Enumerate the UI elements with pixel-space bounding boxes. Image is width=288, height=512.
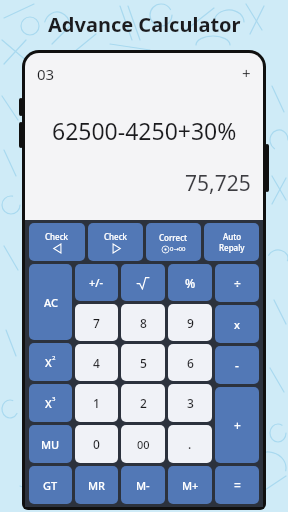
button[interactable]: Correct bbox=[146, 223, 201, 261]
button[interactable]: = bbox=[215, 466, 259, 504]
staticText: X bbox=[45, 396, 52, 411]
button[interactable]: X to the power 3 bbox=[29, 384, 72, 422]
staticText: 3 bbox=[52, 395, 56, 403]
button[interactable]: Square root bbox=[121, 264, 165, 301]
staticText: 7 bbox=[93, 315, 100, 331]
staticText: 5 bbox=[140, 355, 147, 371]
staticText: ÷ bbox=[234, 275, 241, 291]
button[interactable]: 1 bbox=[75, 384, 118, 422]
staticText: 8 bbox=[140, 315, 147, 331]
button[interactable]: + bbox=[215, 387, 259, 463]
button[interactable]: 0 bbox=[75, 425, 118, 463]
staticText: % bbox=[185, 275, 196, 291]
staticText: MR bbox=[88, 478, 106, 493]
button[interactable]: 6 bbox=[168, 344, 212, 381]
button[interactable]: - bbox=[215, 346, 259, 384]
staticText: Correct bbox=[159, 232, 188, 243]
staticText: x bbox=[234, 317, 240, 332]
button[interactable]: X to the power 2 bbox=[29, 343, 72, 381]
button[interactable]: 9 bbox=[168, 304, 212, 341]
staticText: 2 bbox=[52, 354, 56, 362]
staticText: Check bbox=[104, 231, 128, 242]
staticText: + bbox=[242, 63, 251, 83]
button[interactable]: % bbox=[168, 264, 212, 301]
staticText: AC bbox=[44, 295, 58, 310]
button[interactable]: 2 bbox=[121, 384, 165, 422]
staticText: = bbox=[234, 477, 241, 493]
staticText: 3 bbox=[187, 395, 194, 411]
staticText: Advance Calculator bbox=[48, 11, 241, 38]
button[interactable]: Check bbox=[29, 223, 85, 261]
button[interactable]: +/- bbox=[75, 264, 118, 301]
button[interactable]: MU bbox=[29, 425, 72, 463]
staticText: 4 bbox=[93, 355, 100, 371]
staticText: 0 bbox=[93, 436, 100, 452]
button[interactable]: 5 bbox=[121, 344, 165, 381]
staticText: M- bbox=[136, 478, 150, 493]
button[interactable]: 4 bbox=[75, 344, 118, 381]
staticText: 62500-4250+30% bbox=[52, 115, 237, 146]
staticText: Check bbox=[45, 231, 69, 242]
staticText: GT bbox=[43, 478, 58, 493]
staticText: 6 bbox=[187, 355, 194, 371]
staticText: + bbox=[234, 417, 241, 433]
button[interactable]: 00 bbox=[121, 425, 165, 463]
button[interactable]: AC bbox=[29, 264, 72, 340]
button[interactable]: M+ bbox=[168, 466, 212, 504]
staticText: 00 bbox=[137, 437, 150, 452]
staticText: +/- bbox=[89, 275, 104, 290]
staticText: 03 bbox=[37, 64, 55, 84]
button[interactable]: x bbox=[215, 305, 259, 343]
button[interactable]: . bbox=[168, 425, 212, 463]
button[interactable]: ÷ bbox=[215, 264, 259, 302]
button[interactable]: 7 bbox=[75, 304, 118, 341]
staticText: MU bbox=[41, 437, 60, 452]
staticText: M+ bbox=[182, 478, 199, 493]
staticText: . bbox=[188, 436, 192, 452]
button[interactable]: Auto Replay bbox=[204, 223, 259, 261]
staticText: 0→00 bbox=[170, 245, 186, 253]
button[interactable]: GT bbox=[29, 466, 72, 504]
staticText: X bbox=[45, 355, 52, 370]
staticText: 75,725 bbox=[185, 169, 251, 198]
staticText: 9 bbox=[187, 315, 194, 331]
staticText: Repaly bbox=[219, 242, 245, 253]
staticText: 1 bbox=[93, 395, 100, 411]
staticText: 2 bbox=[140, 395, 147, 411]
staticText: Auto bbox=[223, 231, 242, 242]
button[interactable]: 8 bbox=[121, 304, 165, 341]
button[interactable]: M- bbox=[121, 466, 165, 504]
button[interactable]: Check bbox=[88, 223, 143, 261]
button[interactable]: 3 bbox=[168, 384, 212, 422]
staticText: - bbox=[235, 357, 239, 373]
button[interactable]: MR bbox=[75, 466, 118, 504]
